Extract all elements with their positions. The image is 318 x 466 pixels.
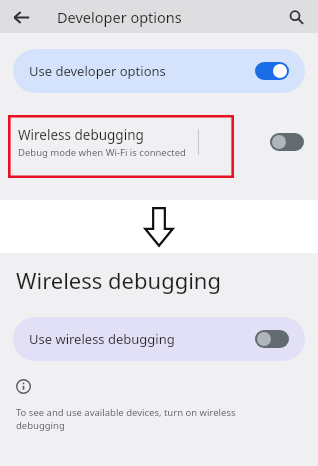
staticText: Debug mode when Wi-Fi is connected — [18, 146, 186, 159]
staticText: Use developer options — [29, 62, 166, 80]
button[interactable]: Wireless debugging — [0, 115, 318, 169]
button[interactable]: Toggle off — [255, 330, 289, 348]
staticText: Wireless debugging — [18, 126, 144, 144]
button[interactable]: Use wireless debugging — [13, 317, 305, 361]
staticText: Developer options — [57, 7, 182, 27]
button[interactable]: Use developer options — [13, 49, 305, 93]
staticText: To see and use available devices, turn o… — [16, 406, 236, 432]
button[interactable]: Search — [280, 1, 312, 33]
button[interactable]: Back — [5, 1, 37, 33]
staticText: Wireless debugging — [16, 265, 221, 295]
button[interactable]: Toggle off — [270, 133, 304, 151]
staticText: Use wireless debugging — [29, 330, 175, 348]
button[interactable]: Toggle on — [255, 62, 289, 80]
